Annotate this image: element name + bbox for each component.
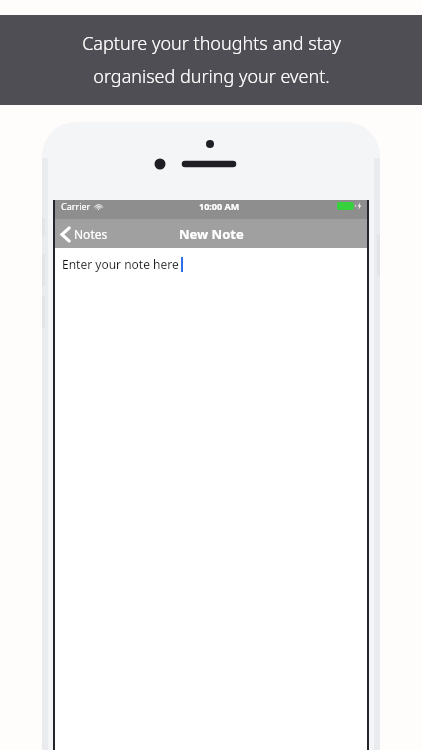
- staticText: 10:00 AM: [199, 200, 240, 212]
- button[interactable]: Back: [55, 222, 116, 246]
- button[interactable]: Enter your note here: [55, 248, 367, 718]
- staticText: New Note: [179, 225, 244, 243]
- staticText: Carrier: [61, 200, 91, 212]
- staticText: Capture your thoughts and stay: [82, 31, 341, 56]
- staticText: organised during your event.: [93, 64, 330, 89]
- staticText: Notes: [74, 226, 108, 242]
- other: Back: [61, 227, 70, 242]
- staticText: Enter your note here: [62, 256, 179, 272]
